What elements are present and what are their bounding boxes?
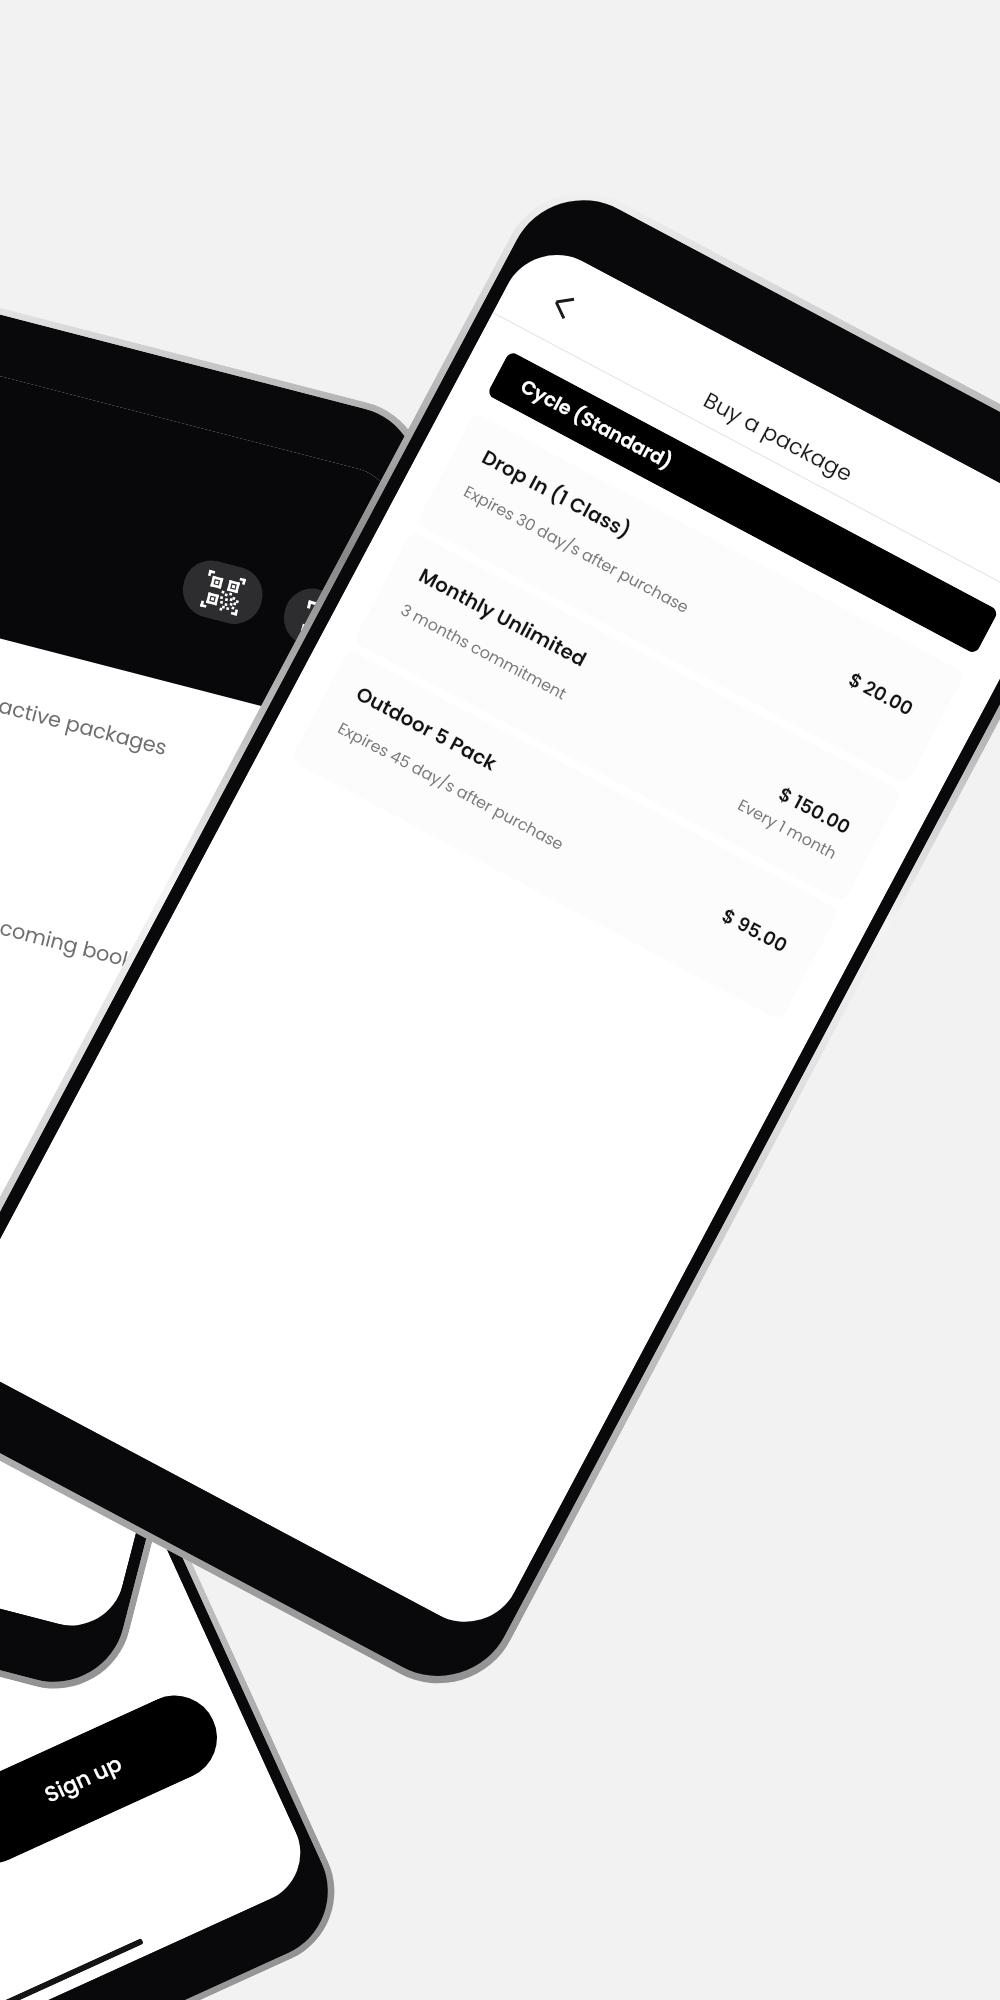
button[interactable]: Cycle (Standard) (486, 350, 999, 655)
staticText: $ 95.00 (717, 902, 792, 959)
button[interactable]: Outdoor 5 Pack (290, 649, 840, 1021)
button[interactable]: Monthly Unlimited (353, 530, 903, 903)
staticText: No upcoming bookings (0, 898, 178, 986)
staticText: $ 20.00 (844, 666, 918, 723)
staticText: Outdoor 5 Pack (351, 680, 502, 778)
button[interactable]: Show QR code (177, 554, 269, 630)
staticText: No active packages (0, 683, 171, 763)
staticText: 3 months commitment (397, 598, 571, 705)
staticText: Cycle (Standard) (516, 373, 678, 476)
staticText: Every 1 month (734, 793, 841, 864)
staticText: Sign up (40, 1748, 127, 1810)
staticText: Expires 45 day/s after purchase (334, 717, 568, 855)
staticText: Expires 30 day/s after purchase (460, 480, 693, 618)
button[interactable]: Drop In (1 Class) (416, 412, 966, 784)
staticText: $ 150.00 (774, 781, 855, 841)
staticText: Buy a package (698, 385, 858, 489)
staticText: Drop In (1 Class) (477, 443, 636, 545)
staticText: Monthly Unlimited (414, 561, 591, 673)
button[interactable]: Show barcode (278, 582, 370, 658)
button[interactable]: Sign up (0, 1682, 231, 1877)
